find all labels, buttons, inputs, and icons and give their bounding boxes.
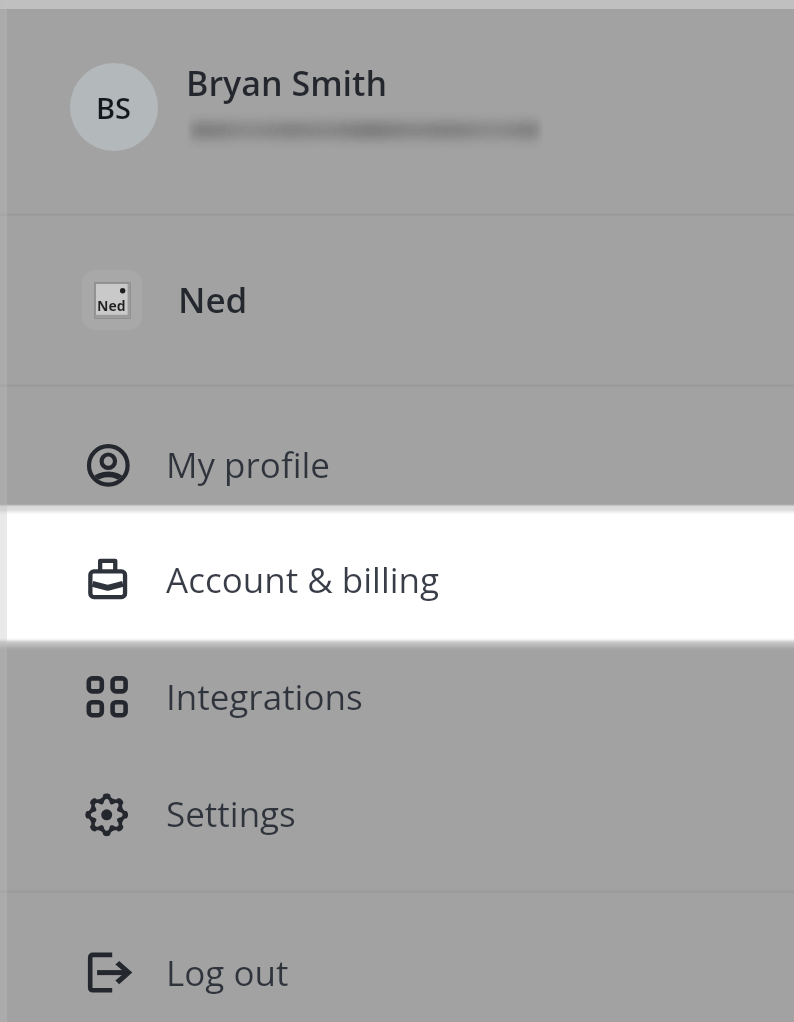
button[interactable]: Integrations xyxy=(0,639,794,755)
button[interactable]: Log out xyxy=(0,915,794,1022)
staticText: Account & billing xyxy=(166,556,440,604)
button[interactable]: BS xyxy=(0,0,794,214)
staticText: Log out xyxy=(166,949,289,997)
staticText: BS xyxy=(96,88,132,127)
staticText: Ned xyxy=(97,296,126,315)
staticText: Integrations xyxy=(166,673,363,721)
button[interactable]: Account & billing xyxy=(0,522,794,638)
button[interactable]: Settings xyxy=(0,756,794,872)
staticText: Ned xyxy=(178,276,248,324)
button[interactable]: Ned xyxy=(0,214,794,385)
staticText: Bryan Smith xyxy=(186,60,388,106)
staticText: My profile xyxy=(166,441,330,489)
button[interactable]: My profile xyxy=(0,407,794,523)
staticText: Settings xyxy=(166,790,296,838)
